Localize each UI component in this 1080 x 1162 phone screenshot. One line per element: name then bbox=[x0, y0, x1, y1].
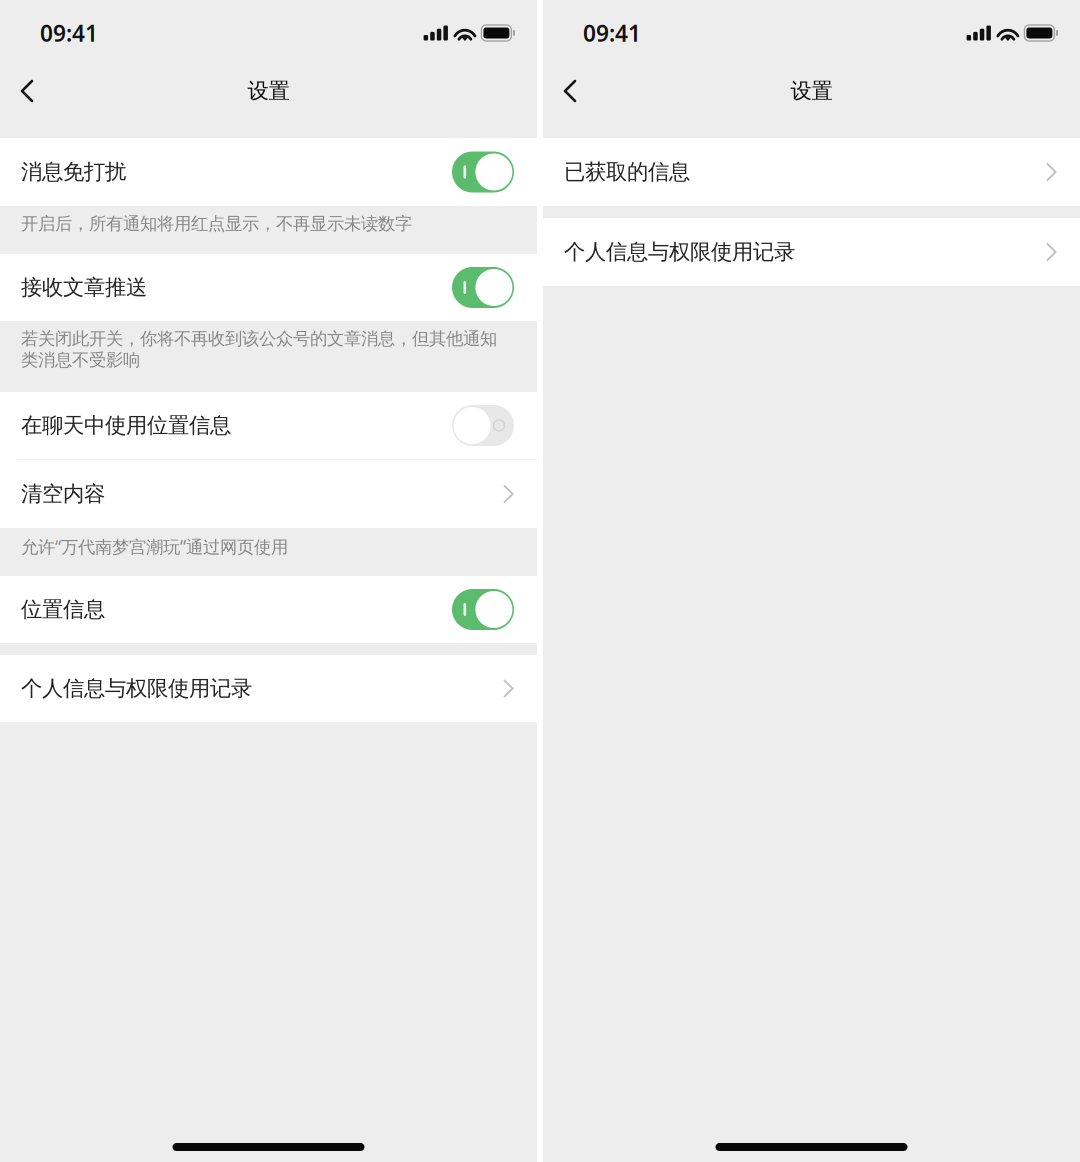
staticText: 个人信息与权限使用记录 bbox=[564, 239, 795, 265]
button[interactable]: 个人信息与权限使用记录 bbox=[0, 655, 537, 722]
staticText: 已获取的信息 bbox=[564, 159, 690, 185]
button[interactable]: 个人信息与权限使用记录 bbox=[543, 218, 1080, 286]
staticText: 09:41 bbox=[40, 18, 98, 48]
button[interactable]: 消息免打扰 bbox=[0, 138, 537, 206]
staticText: 个人信息与权限使用记录 bbox=[21, 675, 252, 702]
staticText: 设置 bbox=[790, 78, 832, 104]
staticText: 位置信息 bbox=[21, 596, 105, 623]
staticText: 若关闭此开关，你将不再收到该公众号的文章消息，但其他通知类消息不受影响 bbox=[21, 328, 497, 371]
button[interactable]: 已获取的信息 bbox=[543, 138, 1080, 206]
button[interactable]: Back bbox=[4, 69, 50, 113]
button[interactable]: 位置信息 bbox=[0, 576, 537, 643]
button[interactable]: 在聊天中使用位置信息 bbox=[0, 392, 537, 459]
button[interactable]: 接收文章推送 bbox=[0, 254, 537, 321]
staticText: 允许“万代南梦宫潮玩”通过网页使用 bbox=[21, 535, 288, 558]
button[interactable]: Back bbox=[547, 69, 593, 113]
button[interactable]: 清空内容 bbox=[0, 460, 537, 528]
staticText: 开启后，所有通知将用红点显示，不再显示未读数字 bbox=[21, 213, 412, 234]
staticText: 清空内容 bbox=[21, 481, 105, 507]
staticText: 接收文章推送 bbox=[21, 274, 147, 301]
staticText: 设置 bbox=[247, 78, 289, 104]
staticText: 09:41 bbox=[583, 18, 641, 48]
staticText: 在聊天中使用位置信息 bbox=[21, 412, 231, 439]
staticText: 消息免打扰 bbox=[21, 159, 126, 185]
